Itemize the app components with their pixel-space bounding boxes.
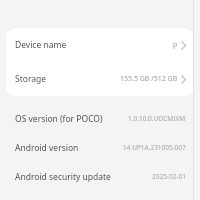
staticText: Android version: [15, 142, 79, 154]
button[interactable]: Storage: [6, 62, 194, 96]
staticText: p: [173, 40, 178, 50]
staticText: OS version (for POCO): [15, 113, 103, 125]
staticText: Storage: [15, 73, 47, 85]
staticText: Device name: [15, 39, 67, 51]
staticText: 1.0.10.0.UOCMIXM: [128, 114, 186, 123]
staticText: 14 UP1A.231005.007: [123, 143, 186, 152]
staticText: Android security update: [15, 171, 111, 183]
button[interactable]: Device name: [6, 28, 194, 62]
button[interactable]: Android version: [6, 133, 194, 162]
staticText: 2025-02-01: [152, 172, 186, 181]
button[interactable]: OS version (for POCO): [6, 104, 194, 133]
staticText: 155.5 GB /512 GB: [120, 74, 178, 84]
button[interactable]: Android security update: [6, 162, 194, 191]
